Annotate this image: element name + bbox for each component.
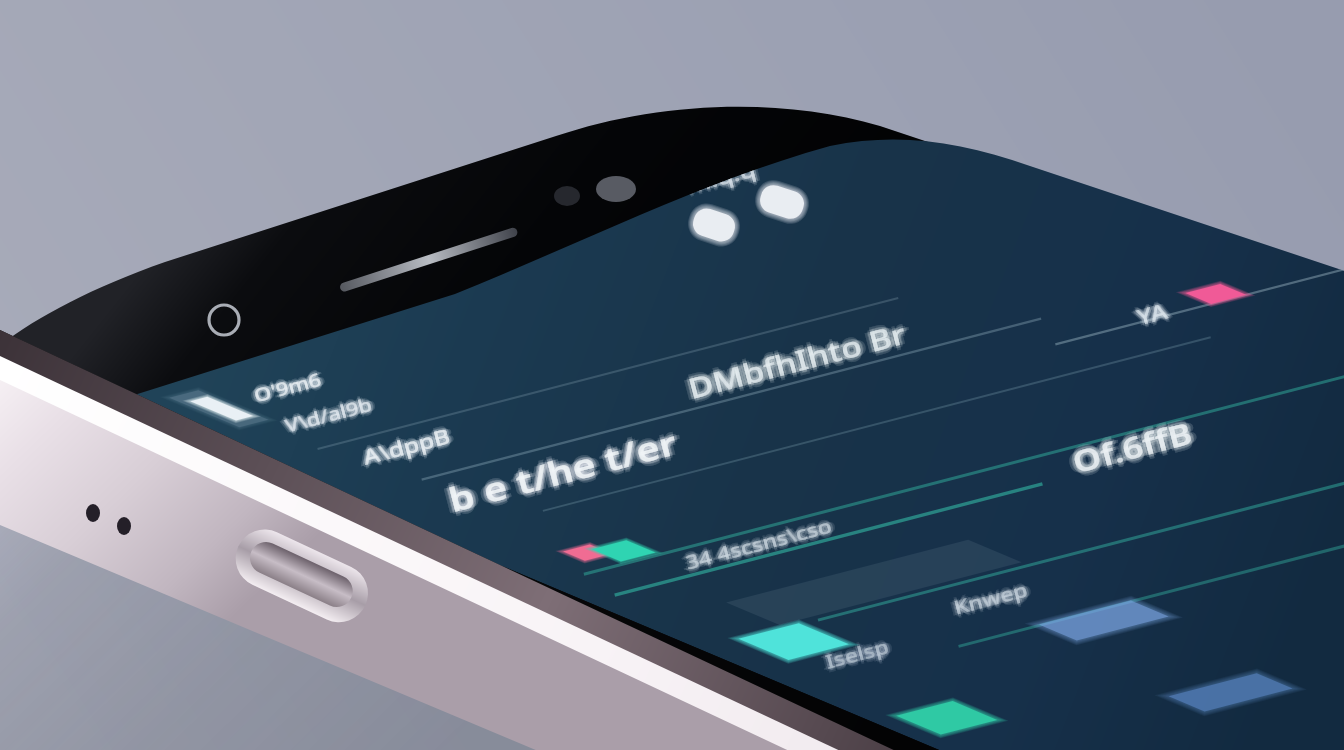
button[interactable] [330, 420, 890, 490]
button[interactable]: Front camera [200, 300, 246, 344]
button[interactable]: Toggle on [746, 616, 820, 666]
button[interactable] [150, 360, 670, 440]
button[interactable]: Notification icon [196, 382, 256, 434]
button[interactable]: Power button [226, 538, 376, 628]
button[interactable] [900, 330, 1300, 410]
button[interactable]: Toggle [570, 534, 634, 578]
button[interactable]: Toggle on [892, 700, 970, 750]
button[interactable]: Wi-Fi status icon [756, 176, 812, 222]
button[interactable] [600, 540, 1300, 630]
button[interactable] [760, 610, 1340, 700]
button[interactable]: Signal status icon [690, 198, 746, 244]
button[interactable] [420, 470, 1060, 560]
button[interactable]: Favourite [1182, 278, 1234, 322]
